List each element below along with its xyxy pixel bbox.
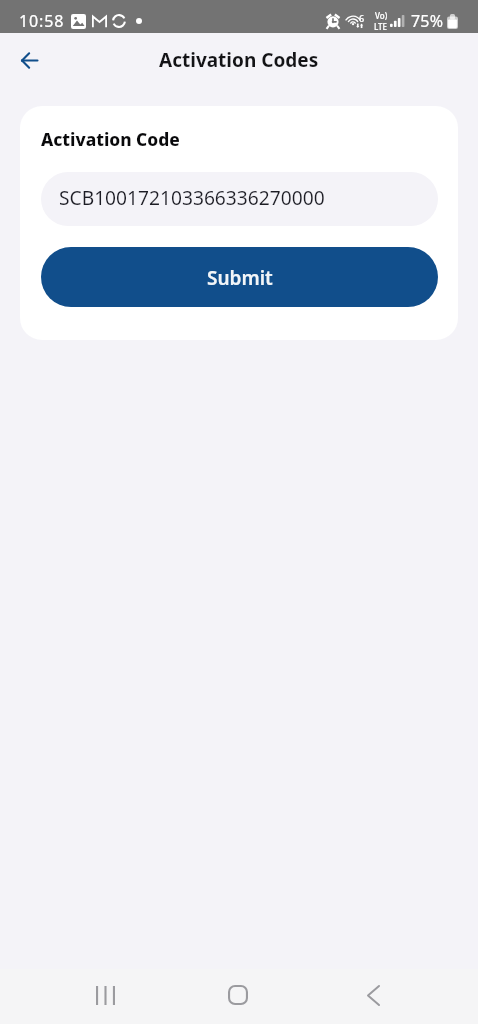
staticText: Activation Codes [159,47,319,73]
staticText: SCB100172103366336270000 [59,184,325,210]
button[interactable]: Recents [73,974,137,1016]
button[interactable]: Home [206,974,270,1016]
button[interactable]: SCB100172103366336270000 [41,172,438,226]
staticText: Vo) [375,10,388,21]
staticText: 75% [411,10,444,32]
staticText: 10:58 [19,10,65,32]
staticText: Activation Code [41,128,180,152]
button[interactable]: Submit [41,247,438,307]
staticText: Submit [207,265,273,291]
staticText: 6 [359,12,365,24]
staticText: LTE [374,21,388,32]
button[interactable]: Back [9,40,49,80]
button[interactable]: Back [341,974,405,1016]
